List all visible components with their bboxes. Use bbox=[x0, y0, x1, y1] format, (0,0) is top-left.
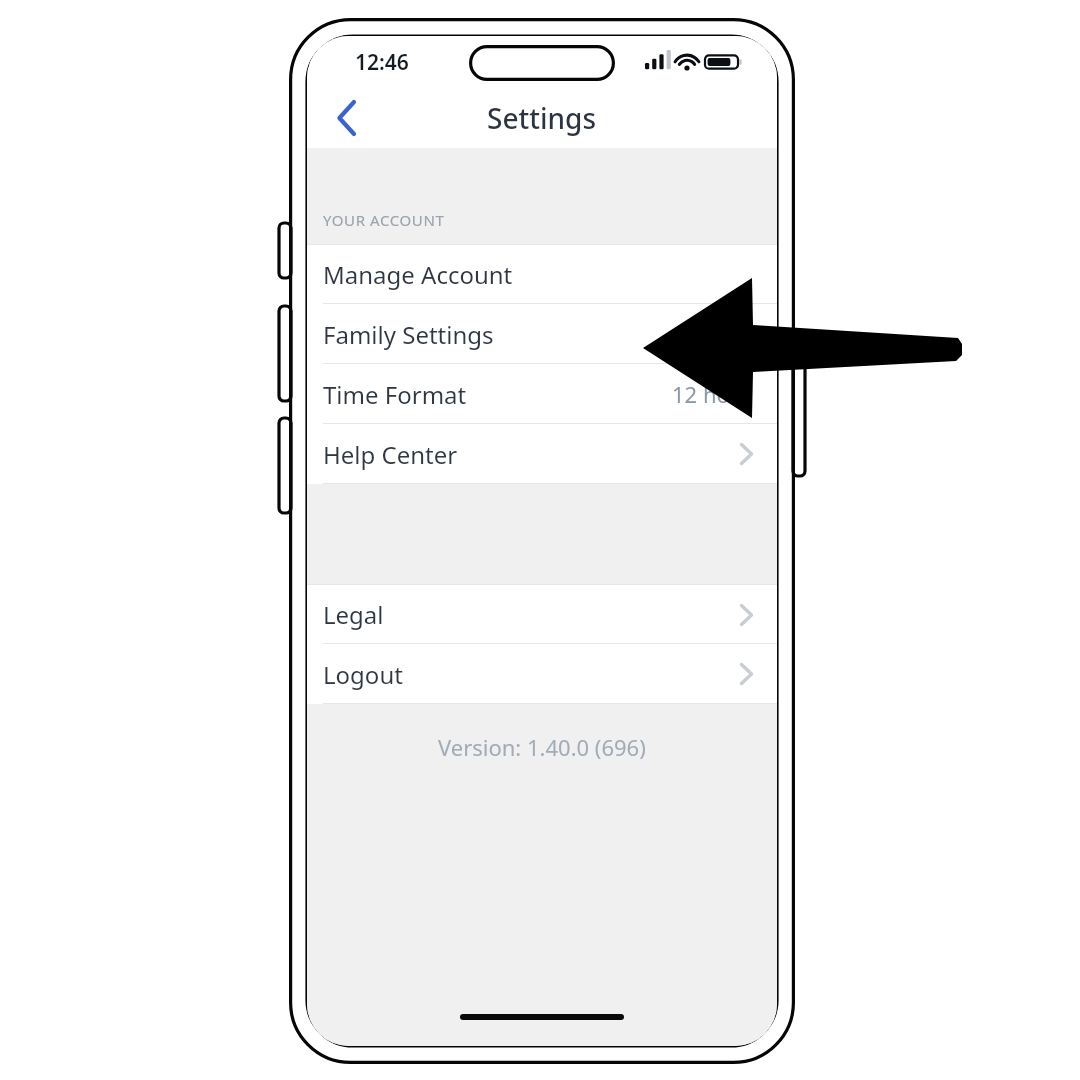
button[interactable]: Logout bbox=[307, 644, 777, 704]
staticText: Family Settings bbox=[323, 318, 494, 351]
button[interactable]: Back bbox=[319, 90, 375, 146]
button[interactable]: Family Settings bbox=[307, 304, 777, 364]
staticText: Legal bbox=[323, 598, 384, 631]
button[interactable]: Time Format bbox=[307, 364, 777, 424]
staticText: Time Format bbox=[323, 378, 467, 411]
staticText: Settings bbox=[487, 99, 597, 137]
staticText: YOUR ACCOUNT bbox=[323, 210, 445, 230]
button[interactable]: Legal bbox=[307, 585, 777, 644]
staticText: Help Center bbox=[323, 438, 458, 471]
staticText: Logout bbox=[323, 658, 403, 691]
staticText: Version: 1.40.0 (696) bbox=[438, 732, 646, 762]
button[interactable]: Help Center bbox=[307, 424, 777, 484]
button[interactable]: Manage Account bbox=[307, 245, 777, 304]
staticText: 12:46 bbox=[355, 48, 409, 77]
staticText: 12 hour bbox=[672, 379, 753, 409]
staticText: Manage Account bbox=[323, 258, 513, 291]
